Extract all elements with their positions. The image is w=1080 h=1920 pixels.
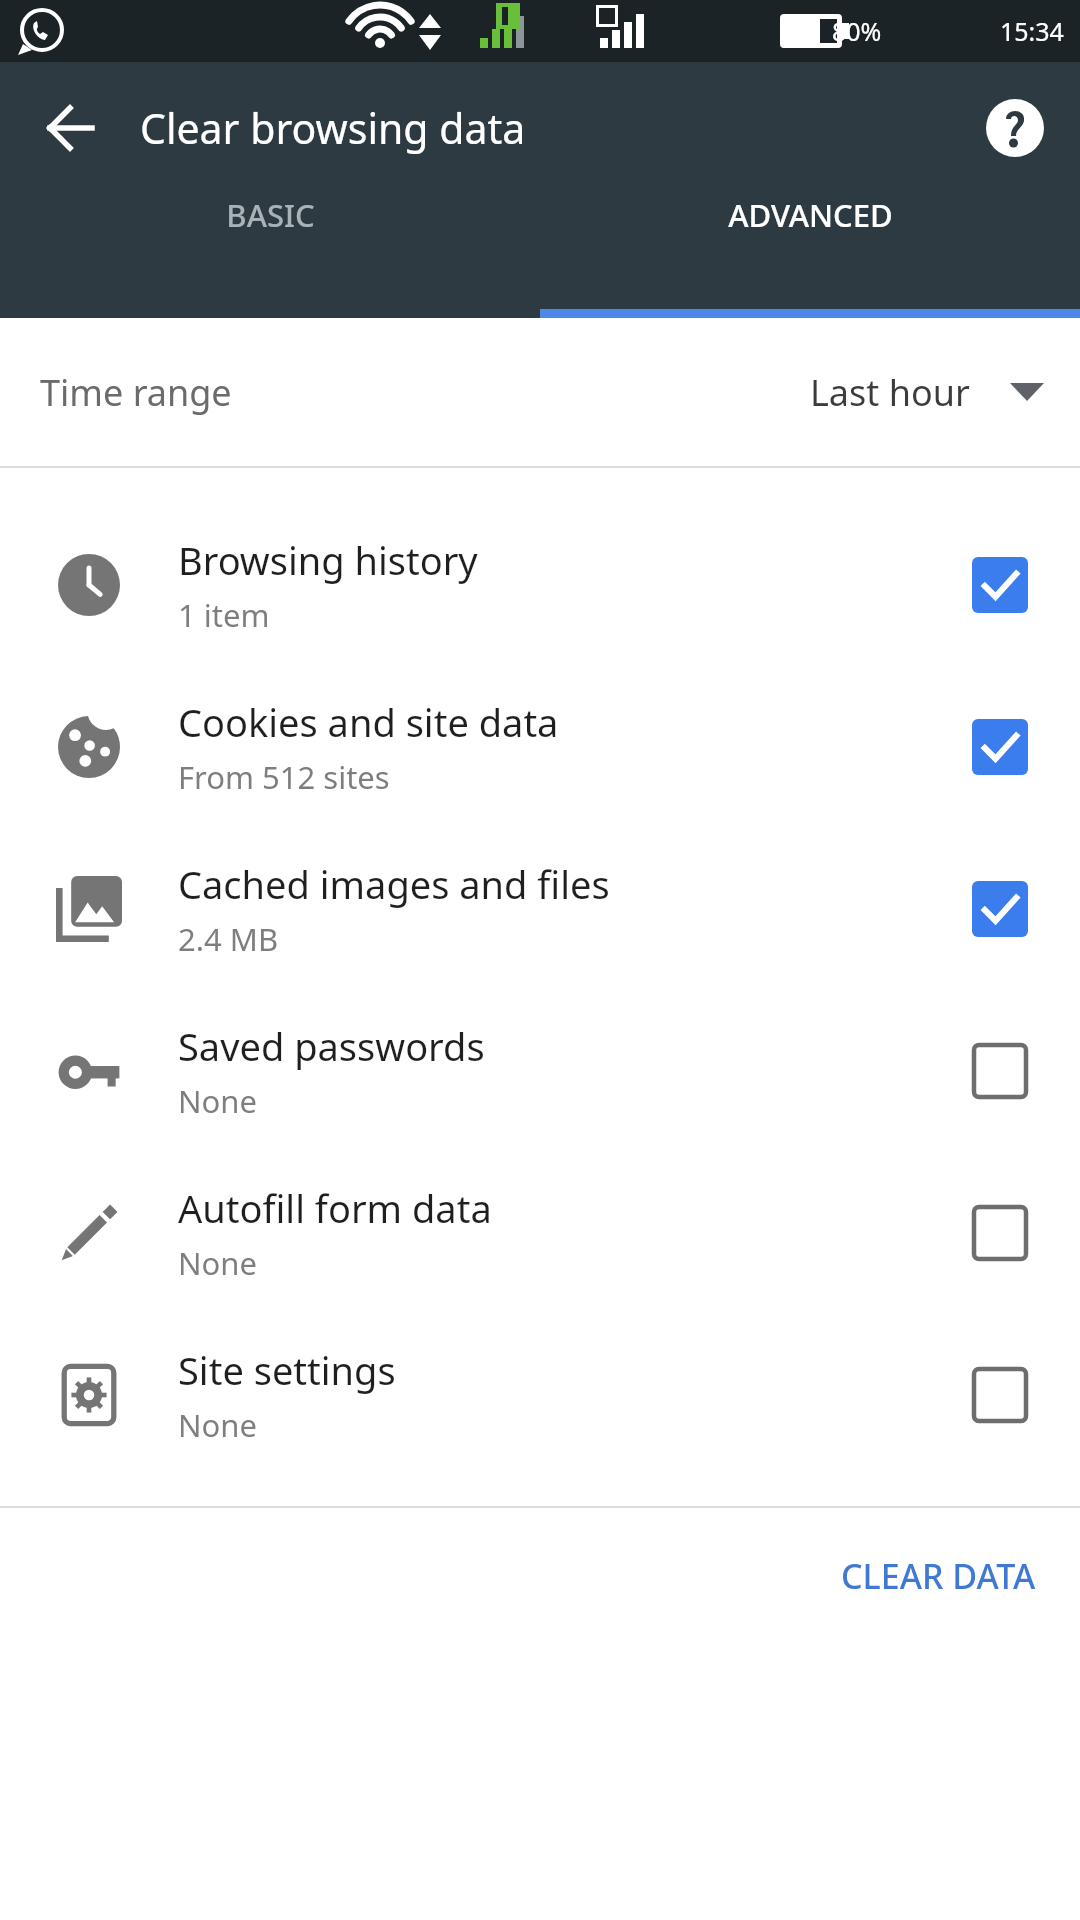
button[interactable]: Help xyxy=(950,62,1080,194)
button[interactable]: ADVANCED xyxy=(540,194,1080,236)
button[interactable]: BASIC xyxy=(0,194,540,236)
staticText: None xyxy=(178,1080,257,1122)
staticText: None xyxy=(178,1242,257,1284)
staticText: Saved passwords xyxy=(178,1020,485,1072)
button[interactable]: CLEAR DATA xyxy=(821,1535,1056,1617)
staticText: 15:34 xyxy=(1000,14,1064,48)
staticText: Cookies and site data xyxy=(178,696,559,748)
staticText: 80% xyxy=(832,14,882,48)
staticText: Last hour xyxy=(810,368,970,417)
button[interactable]: Time range xyxy=(0,318,1080,466)
staticText: Site settings xyxy=(178,1344,396,1396)
staticText: Browsing history xyxy=(178,534,478,586)
staticText: Clear browsing data xyxy=(140,100,950,156)
staticText: 2.4 MB xyxy=(178,918,279,960)
button[interactable]: Cookies and site data xyxy=(0,666,1080,828)
button[interactable]: Cached images and files xyxy=(0,828,1080,990)
staticText: None xyxy=(178,1404,257,1446)
staticText: From 512 sites xyxy=(178,756,390,798)
staticText: CLEAR DATA xyxy=(841,1553,1036,1599)
button[interactable]: Autofill form data xyxy=(0,1152,1080,1314)
button[interactable]: Site settings xyxy=(0,1314,1080,1476)
staticText: Time range xyxy=(40,368,232,417)
staticText: Autofill form data xyxy=(178,1182,492,1234)
button[interactable]: Browsing history xyxy=(0,504,1080,666)
staticText: ADVANCED xyxy=(728,194,893,236)
button[interactable]: Back xyxy=(0,62,140,194)
staticText: BASIC xyxy=(226,194,315,236)
staticText: Cached images and files xyxy=(178,858,610,910)
staticText: 1 item xyxy=(178,594,270,636)
button[interactable]: Saved passwords xyxy=(0,990,1080,1152)
